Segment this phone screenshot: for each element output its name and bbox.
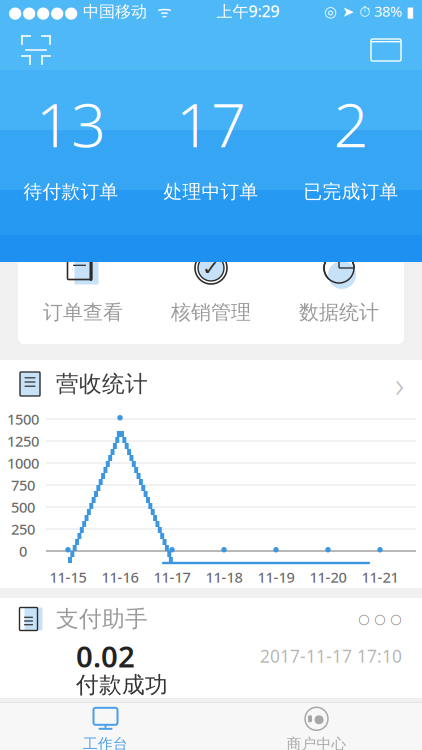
staticText: 工作台	[83, 735, 128, 750]
staticText: 11-21	[361, 567, 398, 587]
staticText: 750	[11, 475, 35, 495]
button[interactable]: ✓	[147, 224, 275, 344]
button[interactable]: 商户中心	[211, 703, 422, 750]
staticText: ›	[395, 361, 404, 407]
staticText: 商户中心	[286, 735, 346, 750]
staticText: 0	[19, 541, 27, 561]
staticText: 0.02	[76, 636, 135, 675]
button[interactable]: 17	[141, 84, 281, 202]
staticText: 11-18	[205, 567, 242, 587]
staticText: 11-20	[309, 567, 346, 587]
staticText: 11-19	[257, 567, 294, 587]
button[interactable]: 数据统计	[275, 224, 403, 344]
staticText: 1000	[7, 453, 39, 473]
button[interactable]: 消息	[360, 24, 412, 76]
staticText: 500	[11, 497, 35, 517]
button[interactable]: 2	[281, 84, 421, 202]
staticText: 1250	[7, 431, 39, 451]
staticText: 250	[11, 519, 35, 539]
staticText: 营收统计	[56, 370, 148, 398]
staticText: 处理中订单	[163, 180, 258, 203]
staticText: 17	[176, 83, 246, 164]
staticText: 13	[36, 83, 106, 164]
staticText: 付款成功	[76, 671, 168, 699]
staticText: 核销管理	[171, 300, 251, 325]
button[interactable]: 营收统计	[0, 361, 422, 407]
button[interactable]: 13	[1, 84, 141, 202]
button[interactable]: 扫一扫	[10, 24, 62, 76]
staticText: 1500	[7, 409, 39, 429]
staticText: 待付款订单	[23, 180, 118, 203]
staticText: 11-16	[101, 567, 138, 587]
staticText: 订单查看	[43, 300, 123, 325]
staticText: 上午9:29	[216, 0, 279, 22]
staticText: ✓	[202, 256, 220, 280]
button[interactable]: 订单查看	[19, 224, 147, 344]
staticText: 2017-11-17 17:10	[260, 644, 402, 667]
staticText: 已完成订单	[303, 180, 398, 203]
staticText: 支付助手	[56, 605, 148, 633]
staticText: 11-15	[49, 567, 86, 587]
staticText: 11-17	[153, 567, 190, 587]
staticText: 数据统计	[299, 300, 379, 325]
staticText: 2	[333, 83, 368, 164]
staticText: ●●●●● 中国移动 ᯤ	[8, 0, 172, 22]
staticText: ◎ ➤ ⏱ 38% ▮	[324, 1, 414, 21]
staticText: ○ ○ ○	[358, 611, 402, 626]
button[interactable]: 支付助手	[0, 598, 422, 698]
button[interactable]: 工作台	[0, 703, 211, 750]
